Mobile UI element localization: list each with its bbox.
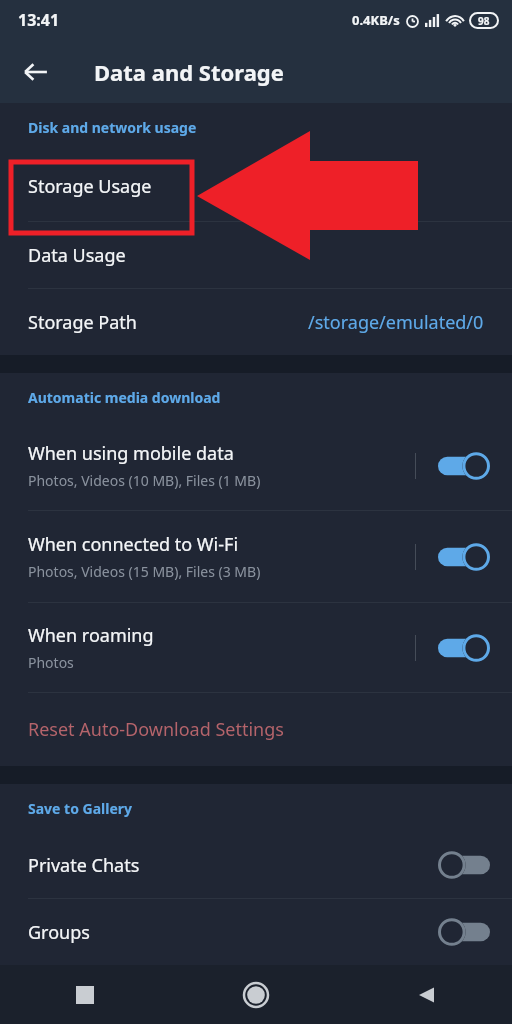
button[interactable]: Data Usage: [0, 222, 512, 288]
staticText: Storage Usage: [28, 174, 484, 199]
staticText: When connected to Wi-Fi: [28, 532, 239, 557]
staticText: When using mobile data: [28, 441, 234, 466]
staticText: Private Chats: [28, 853, 140, 878]
staticText: Photos: [28, 653, 74, 672]
button[interactable]: Back: [341, 965, 512, 1024]
staticText: Save to Gallery: [28, 799, 133, 818]
staticText: Disk and network usage: [28, 118, 197, 137]
staticText: When roaming: [28, 623, 154, 648]
button[interactable]: When roaming: [0, 603, 512, 692]
staticText: Data Usage: [28, 243, 484, 268]
staticText: 98: [478, 14, 490, 28]
button[interactable]: When using mobile data: [0, 421, 512, 510]
staticText: Reset Auto-Download Settings: [28, 717, 284, 742]
staticText: Automatic media download: [28, 388, 221, 407]
button[interactable]: Groups: [0, 899, 512, 965]
staticText: Storage Path: [28, 310, 308, 335]
staticText: 0.4KB/s: [352, 11, 400, 29]
button[interactable]: Private Chats: [0, 832, 512, 898]
staticText: /storage/emulated/0: [308, 310, 484, 335]
button[interactable]: Storage Path: [0, 289, 512, 355]
staticText: Photos, Videos (15 MB), Files (3 MB): [28, 562, 261, 581]
button[interactable]: Back: [10, 46, 62, 98]
button[interactable]: When connected to Wi-Fi: [0, 511, 512, 602]
button[interactable]: Home: [170, 965, 341, 1024]
staticText: 13:41: [18, 9, 60, 31]
staticText: Groups: [28, 920, 90, 945]
button[interactable]: Storage Usage: [0, 151, 512, 221]
button[interactable]: Recent apps: [0, 965, 170, 1024]
button[interactable]: Reset Auto-Download Settings: [0, 693, 512, 766]
staticText: Photos, Videos (10 MB), Files (1 MB): [28, 471, 261, 490]
staticText: Data and Storage: [94, 57, 284, 87]
